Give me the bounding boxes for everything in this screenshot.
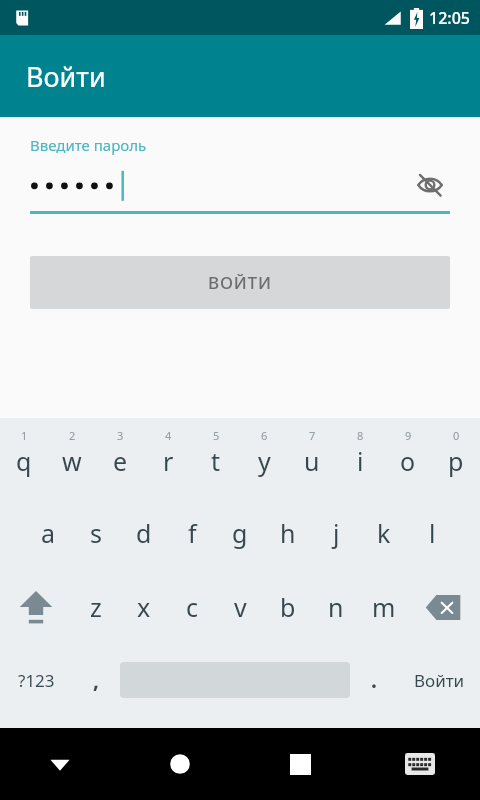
- staticText: 1: [21, 428, 28, 443]
- button[interactable]: Скрыть клавиатуру: [0, 728, 120, 800]
- staticText: Войти: [414, 669, 465, 692]
- staticText: k: [377, 516, 391, 550]
- staticText: j: [333, 516, 340, 550]
- staticText: m: [372, 590, 396, 624]
- button[interactable]: d: [120, 496, 168, 570]
- staticText: o: [400, 444, 416, 478]
- staticText: e: [113, 444, 128, 478]
- staticText: t: [211, 444, 221, 478]
- button[interactable]: Домой: [120, 728, 240, 800]
- staticText: c: [186, 590, 199, 624]
- staticText: v: [234, 590, 247, 624]
- button[interactable]: m: [360, 570, 408, 644]
- button[interactable]: x: [120, 570, 168, 644]
- staticText: 12:05: [429, 7, 470, 29]
- staticText: 6: [261, 428, 268, 443]
- staticText: l: [429, 516, 436, 550]
- button[interactable]: ,: [72, 644, 120, 716]
- button[interactable]: f: [168, 496, 216, 570]
- button[interactable]: g: [216, 496, 264, 570]
- button[interactable]: 9: [384, 424, 432, 496]
- staticText: 2: [69, 428, 76, 443]
- button[interactable]: Обзор: [240, 728, 360, 800]
- button[interactable]: b: [264, 570, 312, 644]
- button[interactable]: Показать пароль: [30, 165, 450, 205]
- button[interactable]: 1: [0, 424, 48, 496]
- button[interactable]: Shift: [0, 570, 72, 644]
- button[interactable]: s: [72, 496, 120, 570]
- button[interactable]: k: [360, 496, 408, 570]
- staticText: 4: [165, 428, 172, 443]
- staticText: .: [371, 666, 377, 695]
- button[interactable]: ?123: [0, 644, 72, 716]
- staticText: 7: [309, 428, 316, 443]
- button[interactable]: Удалить: [408, 570, 480, 644]
- staticText: ВОЙТИ: [208, 271, 272, 294]
- button[interactable]: n: [312, 570, 360, 644]
- staticText: b: [280, 590, 296, 624]
- button[interactable]: 6: [240, 424, 288, 496]
- button[interactable]: Показать пароль: [410, 165, 450, 205]
- staticText: 0: [453, 428, 460, 443]
- staticText: Введите пароль: [30, 135, 147, 155]
- button[interactable]: h: [264, 496, 312, 570]
- button[interactable]: 8: [336, 424, 384, 496]
- button[interactable]: v: [216, 570, 264, 644]
- staticText: 9: [405, 428, 412, 443]
- staticText: ?123: [18, 669, 55, 692]
- button[interactable]: Переключить клавиатуру: [360, 728, 480, 800]
- staticText: i: [357, 444, 364, 478]
- staticText: d: [136, 516, 152, 550]
- staticText: y: [258, 444, 271, 478]
- button[interactable]: ВОЙТИ: [30, 256, 450, 309]
- button[interactable]: l: [408, 496, 456, 570]
- staticText: f: [188, 516, 197, 550]
- staticText: n: [328, 590, 344, 624]
- staticText: h: [280, 516, 296, 550]
- staticText: 8: [357, 428, 364, 443]
- staticText: z: [90, 590, 102, 624]
- staticText: w: [62, 444, 82, 478]
- staticText: u: [304, 444, 320, 478]
- button[interactable]: 3: [96, 424, 144, 496]
- staticText: r: [163, 444, 174, 478]
- button[interactable]: a: [24, 496, 72, 570]
- button[interactable]: Войти: [398, 644, 480, 716]
- button[interactable]: 2: [48, 424, 96, 496]
- staticText: q: [16, 444, 32, 478]
- button[interactable]: j: [312, 496, 360, 570]
- button[interactable]: 4: [144, 424, 192, 496]
- staticText: x: [137, 590, 151, 624]
- button[interactable]: 7: [288, 424, 336, 496]
- staticText: ,: [93, 666, 99, 695]
- staticText: s: [90, 516, 102, 550]
- staticText: Войти: [26, 58, 106, 95]
- staticText: g: [232, 516, 248, 550]
- button[interactable]: 5: [192, 424, 240, 496]
- staticText: p: [448, 444, 464, 478]
- button[interactable]: 0: [432, 424, 480, 496]
- button[interactable]: z: [72, 570, 120, 644]
- staticText: a: [41, 516, 56, 550]
- button[interactable]: .: [350, 644, 398, 716]
- staticText: 3: [117, 428, 124, 443]
- button[interactable]: c: [168, 570, 216, 644]
- staticText: 5: [213, 428, 220, 443]
